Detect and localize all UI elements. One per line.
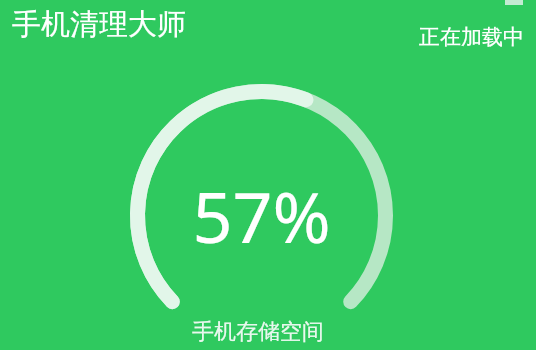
staticText: 手机存储空间 [192, 318, 324, 346]
button[interactable]: 正在加载中 [419, 24, 524, 50]
button[interactable]: 手机清理大师 [12, 6, 186, 43]
staticText: 57% [192, 168, 331, 263]
other: 手机存储空间 57% [130, 84, 393, 347]
